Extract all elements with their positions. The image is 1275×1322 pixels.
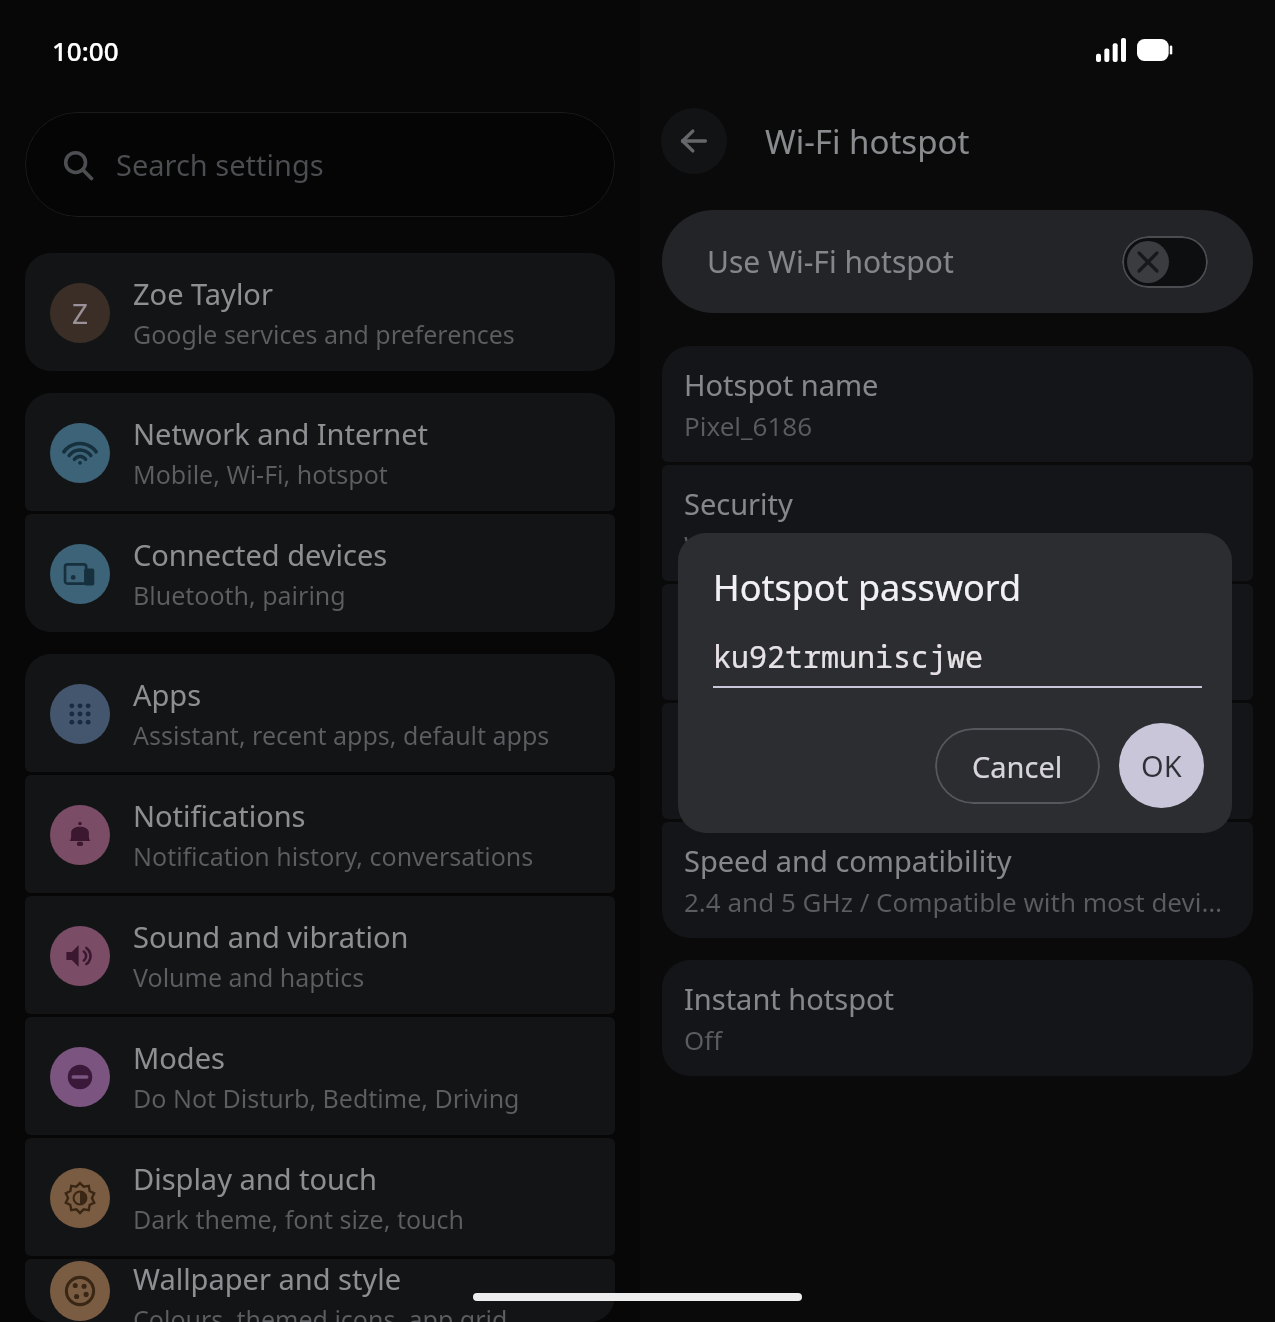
button[interactable]: Sound and vibration (25, 896, 615, 1014)
button[interactable]: Cancel (935, 728, 1100, 804)
staticText: Mobile, Wi-Fi, hotspot (133, 457, 388, 491)
button[interactable]: Connected devices (25, 514, 615, 632)
button[interactable]: Instant hotspot (662, 960, 1253, 1076)
staticText: Z (72, 294, 89, 332)
button[interactable]: Hotspot password (662, 584, 1253, 700)
staticText: Network and Internet (133, 414, 429, 453)
staticText: Apps (133, 675, 202, 714)
button[interactable]: Use Wi-Fi hotspot (662, 210, 1253, 313)
staticText: ku92trmuniscjwe (713, 636, 983, 677)
staticText: Security (684, 484, 793, 523)
staticText: Instant hotspot (684, 979, 894, 1018)
staticText: Wallpaper and style (133, 1259, 401, 1298)
button[interactable]: Apps (25, 654, 615, 772)
staticText: 10:00 (52, 33, 119, 68)
button[interactable]: OK (1119, 723, 1204, 808)
staticText: Dark theme, font size, touch (133, 1202, 464, 1236)
staticText: Display and touch (133, 1159, 377, 1198)
staticText: Notifications (133, 796, 306, 835)
button[interactable]: Use Wi-Fi hotspot, off (1122, 236, 1208, 288)
button[interactable]: Search settings (25, 112, 615, 217)
button[interactable]: Back (661, 108, 727, 174)
staticText: Do Not Disturb, Bedtime, Driving (133, 1081, 520, 1115)
button[interactable]: Security (662, 465, 1253, 581)
staticText: Assistant, recent apps, default apps (133, 718, 550, 752)
staticText: Use Wi-Fi hotspot (707, 241, 954, 282)
staticText: Off (684, 1022, 723, 1057)
staticText: Wi-Fi hotspot (765, 119, 970, 164)
button[interactable]: Wallpaper and style (25, 1259, 615, 1322)
staticText: Speed and compatibility (684, 841, 1012, 880)
staticText: Search settings (116, 145, 324, 184)
staticText: Modes (133, 1038, 225, 1077)
button[interactable]: Modes (25, 1017, 615, 1135)
staticText: Sound and vibration (133, 917, 409, 956)
staticText: Notification history, conversations (133, 839, 534, 873)
staticText: Google services and preferences (133, 317, 515, 351)
button[interactable]: Speed and compatibility (662, 822, 1253, 938)
staticText: OK (1141, 746, 1182, 785)
staticText: Zoe Taylor (133, 274, 273, 313)
staticText: Bluetooth, pairing (133, 578, 346, 612)
staticText: Cancel (972, 747, 1063, 786)
staticText: 2.4 and 5 GHz / Compatible with most dev… (684, 884, 1231, 919)
staticText: Hotspot password (684, 603, 933, 642)
staticText: •••••••••• (684, 646, 782, 681)
staticText: Volume and haptics (133, 960, 365, 994)
button[interactable]: Hotspot name (662, 346, 1253, 462)
button[interactable]: ku92trmuniscjwe (713, 636, 1202, 688)
staticText: Hotspot name (684, 365, 879, 404)
staticText: Connected devices (133, 535, 388, 574)
staticText: WPA3-Personal (684, 527, 870, 562)
staticText: Pixel_6186 (684, 408, 813, 443)
staticText: Hotspot password (713, 563, 1022, 612)
button[interactable]: AP Band (662, 703, 1253, 819)
button[interactable]: Notifications (25, 775, 615, 893)
button[interactable]: Z (25, 253, 615, 371)
button[interactable]: Display and touch (25, 1138, 615, 1256)
button[interactable]: Network and Internet (25, 393, 615, 511)
staticText: Colours, themed icons, app grid (133, 1302, 508, 1322)
